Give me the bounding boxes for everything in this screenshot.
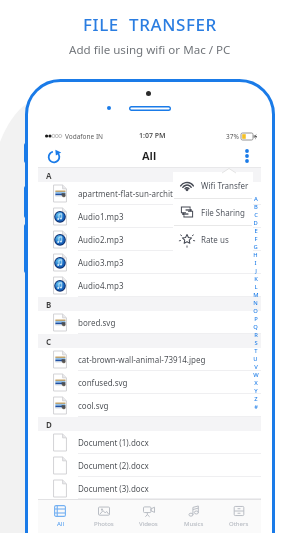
- staticText: Others: [229, 520, 249, 528]
- staticText: Audio3.mp3: [78, 257, 124, 268]
- button[interactable]: Rate us: [173, 226, 253, 252]
- staticText: 37%: [226, 132, 239, 141]
- staticText: confused.svg: [78, 377, 128, 388]
- staticText: H: [253, 251, 258, 259]
- staticText: Document (1).docx: [78, 437, 149, 448]
- staticText: All: [57, 520, 64, 528]
- staticText: B: [254, 203, 258, 211]
- staticText: Q: [253, 323, 258, 331]
- staticText: Add file using wifi or Mac / PC: [69, 42, 231, 58]
- staticText: Wifi Transfer: [201, 180, 249, 191]
- staticText: N: [253, 299, 258, 307]
- button[interactable]: Musics: [171, 500, 216, 533]
- button[interactable]: All: [38, 500, 82, 533]
- staticText: cool.svg: [78, 400, 109, 411]
- button[interactable]: Videos: [126, 500, 171, 533]
- staticText: File Sharing: [201, 207, 245, 218]
- button[interactable]: cat-brown-wall-animal-73914.jpeg: [38, 348, 261, 371]
- button[interactable]: bored.svg: [38, 311, 261, 334]
- staticText: FILE TRANSFER: [83, 13, 217, 36]
- staticText: Audio1.mp3: [78, 211, 124, 222]
- staticText: T: [254, 347, 258, 355]
- button[interactable]: File Sharing: [173, 199, 253, 225]
- staticText: D: [46, 419, 52, 430]
- staticText: M: [253, 291, 259, 299]
- staticText: Vodafone IN: [65, 132, 104, 141]
- staticText: W: [253, 371, 259, 379]
- staticText: Audio4.mp3: [78, 280, 124, 291]
- staticText: S: [254, 339, 258, 347]
- staticText: All: [142, 148, 157, 163]
- staticText: C: [46, 336, 52, 347]
- staticText: X: [254, 379, 258, 387]
- button[interactable]: apartment-flat-sun-archit: [38, 182, 261, 205]
- staticText: A: [254, 195, 258, 203]
- staticText: Z: [254, 395, 258, 403]
- button[interactable]: Wifi Transfer: [173, 172, 253, 198]
- staticText: V: [254, 363, 258, 371]
- button[interactable]: cool.svg: [38, 394, 261, 417]
- button[interactable]: Others: [216, 500, 261, 533]
- button[interactable]: Document (1).docx: [38, 431, 261, 454]
- staticText: K: [254, 275, 258, 283]
- staticText: I: [254, 259, 257, 267]
- staticText: Rate us: [201, 234, 229, 245]
- staticText: 1:07 PM: [139, 131, 166, 141]
- staticText: cat-brown-wall-animal-73914.jpeg: [78, 354, 206, 365]
- staticText: L: [254, 283, 258, 291]
- button[interactable]: More options: [238, 147, 256, 165]
- staticText: #: [254, 403, 258, 411]
- staticText: P: [254, 315, 258, 323]
- button[interactable]: Audio4.mp3: [38, 274, 261, 297]
- staticText: Photos: [94, 520, 114, 528]
- button[interactable]: Audio1.mp3: [38, 205, 261, 228]
- staticText: Y: [254, 387, 258, 395]
- staticText: E: [254, 227, 258, 235]
- staticText: A: [46, 170, 52, 181]
- staticText: O: [253, 307, 258, 315]
- staticText: apartment-flat-sun-archit: [78, 188, 173, 199]
- staticText: Document (3).docx: [78, 483, 149, 494]
- staticText: bored.svg: [78, 317, 116, 328]
- button[interactable]: Audio3.mp3: [38, 251, 261, 274]
- button[interactable]: Document (2).docx: [38, 454, 261, 477]
- staticText: R: [254, 331, 258, 339]
- staticText: Musics: [184, 520, 204, 528]
- staticText: Audio2.mp3: [78, 234, 124, 245]
- staticText: Videos: [139, 520, 158, 528]
- staticText: D: [253, 219, 258, 227]
- button[interactable]: confused.svg: [38, 371, 261, 394]
- button[interactable]: Photos: [82, 500, 126, 533]
- button[interactable]: Audio2.mp3: [38, 228, 261, 251]
- staticText: B: [46, 299, 52, 310]
- staticText: J: [255, 267, 257, 275]
- staticText: G: [253, 243, 258, 251]
- button[interactable]: Refresh: [44, 146, 64, 166]
- button[interactable]: Document (3).docx: [38, 477, 261, 499]
- button[interactable]: Alphabet index: [250, 195, 261, 411]
- staticText: Document (2).docx: [78, 460, 149, 471]
- staticText: F: [254, 235, 258, 243]
- staticText: C: [254, 211, 258, 219]
- staticText: U: [253, 355, 258, 363]
